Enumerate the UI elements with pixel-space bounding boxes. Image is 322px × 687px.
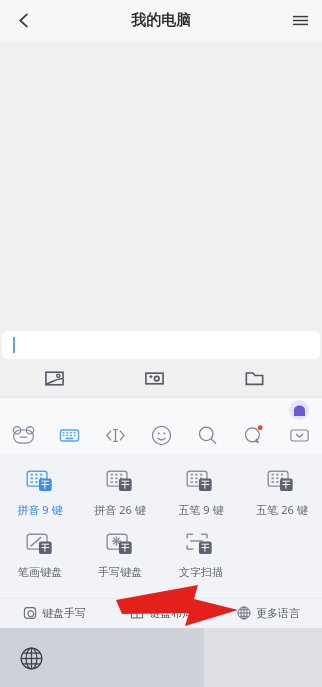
button[interactable]: Profile [289,400,309,420]
staticText: 拼音 26 键 [94,502,146,517]
button[interactable]: 更多语言 [215,598,322,628]
button[interactable]: Gallery [38,362,70,394]
button[interactable]: Voice changer [230,416,276,454]
staticText: 拼音 9 键 [17,502,63,517]
button[interactable]: Baidu input [0,416,46,454]
button[interactable]: Collapse keyboard [276,416,322,454]
button[interactable]: 键盘布局 [108,598,215,628]
button[interactable]: 拼音 9 键 [0,466,80,517]
staticText: 文字扫描 [179,565,223,579]
button[interactable]: Keyboard [46,416,92,454]
staticText: 更多语言 [256,606,300,620]
button[interactable]: 键盘手写 [0,598,108,628]
staticText: 手写键盘 [98,565,142,579]
button[interactable]: Text input [2,331,320,359]
staticText: 键盘布局 [149,606,193,620]
button[interactable]: Files [238,362,270,394]
button[interactable]: Sticker [138,362,170,394]
button[interactable]: 手写键盘 [80,529,160,579]
staticText: 键盘手写 [42,606,86,620]
staticText: 我的电脑 [131,11,191,30]
button[interactable]: Emoji [138,416,184,454]
button[interactable]: 拼音 26 键 [80,466,160,517]
button[interactable]: 笔画键盘 [0,529,80,579]
button[interactable]: Edit text [92,416,138,454]
button[interactable]: Search [184,416,230,454]
staticText: 五笔 26 键 [256,502,308,517]
button[interactable]: Switch language [16,643,46,673]
button[interactable]: 五笔 26 键 [241,466,322,517]
staticText: 五笔 9 键 [178,502,224,517]
button[interactable]: 文字扫描 [160,529,241,579]
button[interactable]: 五笔 9 键 [160,466,241,517]
button[interactable]: Menu [278,0,322,41]
staticText: 笔画键盘 [18,565,62,579]
button[interactable]: Back [0,0,46,41]
